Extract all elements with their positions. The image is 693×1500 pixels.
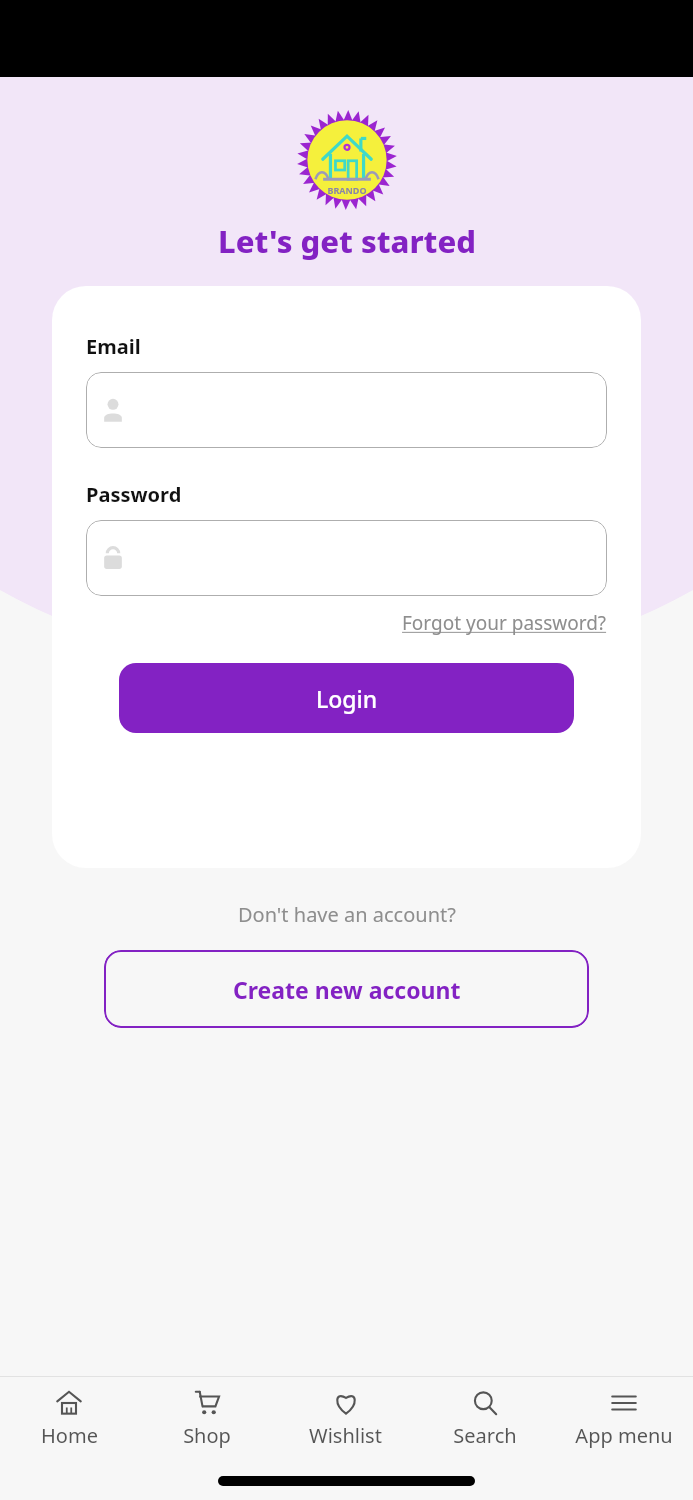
other: Wishlist bbox=[332, 1389, 360, 1417]
other: Password bbox=[100, 545, 126, 571]
staticText: Password bbox=[86, 481, 182, 508]
button[interactable]: Search bbox=[415, 1383, 554, 1455]
button[interactable]: Email bbox=[86, 372, 607, 448]
button[interactable]: Login bbox=[119, 663, 574, 733]
other: Home bbox=[55, 1389, 83, 1417]
staticText: Don't have an account? bbox=[238, 901, 456, 928]
button[interactable]: Home bbox=[0, 1383, 138, 1455]
button[interactable]: Password bbox=[86, 520, 607, 596]
button[interactable]: App menu bbox=[554, 1383, 693, 1455]
staticText: Forgot your password? bbox=[402, 610, 607, 636]
button[interactable]: Create new account bbox=[104, 950, 589, 1028]
staticText: Create new account bbox=[233, 974, 461, 1005]
staticText: Home bbox=[41, 1422, 98, 1449]
other: Search bbox=[471, 1389, 499, 1417]
other: Email bbox=[100, 397, 126, 423]
staticText: Shop bbox=[183, 1422, 231, 1449]
staticText: App menu bbox=[575, 1422, 673, 1449]
staticText: Wishlist bbox=[309, 1422, 382, 1449]
staticText: Login bbox=[316, 683, 378, 714]
staticText: Email bbox=[86, 333, 141, 360]
button[interactable]: Forgot your password? bbox=[402, 610, 607, 636]
button[interactable]: Wishlist bbox=[276, 1383, 415, 1455]
staticText: Search bbox=[453, 1422, 517, 1449]
other: Brando logo bbox=[297, 110, 397, 210]
staticText: BRANDO bbox=[327, 184, 367, 196]
button[interactable]: Shop bbox=[138, 1383, 276, 1455]
other: App menu bbox=[610, 1389, 638, 1417]
other: Shop bbox=[193, 1389, 221, 1417]
staticText: Let's get started bbox=[218, 220, 476, 262]
